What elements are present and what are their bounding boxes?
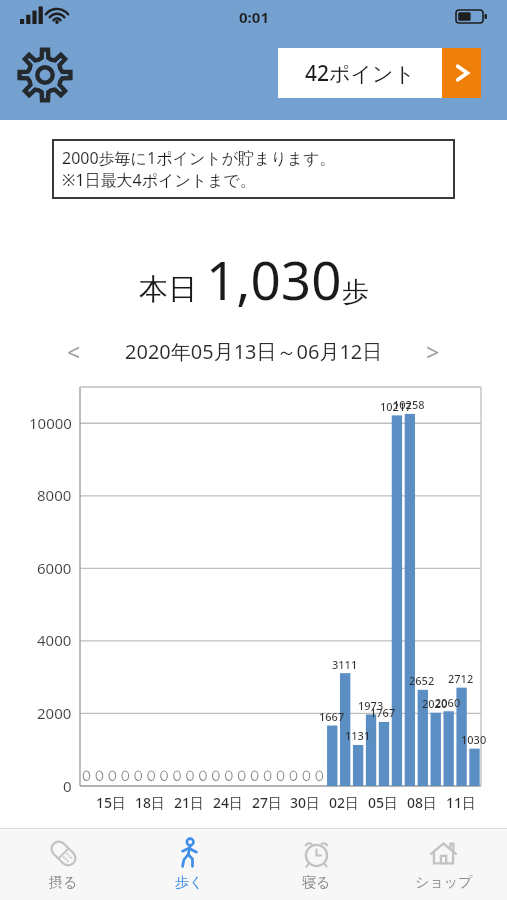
staticText: 8000 [37,485,72,505]
staticText: 2000 [37,703,72,723]
staticText: 0 [63,776,72,796]
button[interactable]: Previous period [58,335,90,367]
button[interactable]: ショップ [380,829,507,900]
staticText: 2652 [409,673,435,688]
staticText: 2020年05月13日～06月12日 [125,338,383,365]
staticText: 11日 [446,793,477,812]
button[interactable]: 歩く [126,829,253,900]
staticText: 05日 [368,793,399,812]
staticText: < [67,336,81,367]
staticText: 1667 [319,709,345,724]
staticText: 歩 [342,275,369,309]
staticText: 24日 [213,793,244,812]
staticText: 1131 [345,728,371,743]
staticText: 15日 [96,793,127,812]
button[interactable]: Settings [13,43,77,107]
staticText: 0:01 [239,7,269,27]
staticText: 4000 [37,630,72,650]
staticText: 1767 [370,705,396,720]
staticText: 寝る [302,874,331,892]
staticText: 08日 [407,793,438,812]
staticText: 歩く [175,874,204,892]
button[interactable]: 寝る [253,829,380,900]
staticText: 02日 [329,793,360,812]
staticText: 1973 [358,698,384,713]
button[interactable]: 摂る [0,829,126,900]
staticText: ショップ [415,874,473,892]
staticText: 2712 [448,671,474,686]
button[interactable]: 42 points [278,48,481,98]
button[interactable]: Next period [417,335,449,367]
staticText: 21日 [174,793,205,812]
staticText: 2060 [435,695,461,710]
staticText: 6000 [37,558,72,578]
staticText: ※1日最大4ポイントまで。 [62,169,256,191]
staticText: 42ポイント [305,59,415,88]
staticText: 本日 [139,271,197,308]
staticText: 1,030 [206,243,342,315]
staticText: 10000 [29,413,72,433]
staticText: 2000歩毎に1ポイントが貯まります。 [62,147,336,169]
staticText: 10258 [393,397,425,412]
staticText: 1030 [461,732,487,747]
staticText: 18日 [135,793,166,812]
staticText: 2020 [422,696,448,711]
staticText: 10217 [380,399,412,414]
staticText: 27日 [252,793,283,812]
staticText: 30日 [290,793,321,812]
staticText: 摂る [49,874,78,892]
staticText: > [426,336,440,367]
staticText: 3111 [332,657,358,672]
